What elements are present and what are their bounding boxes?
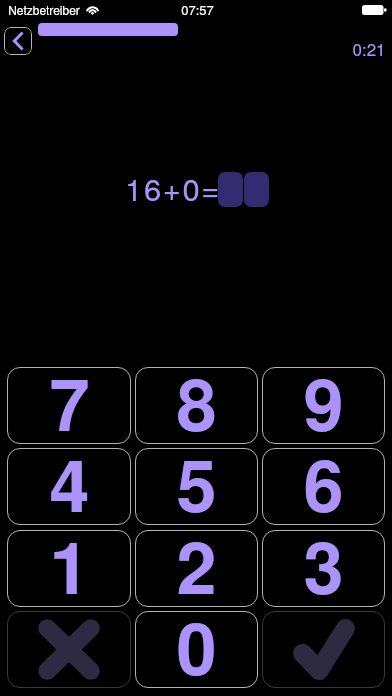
button[interactable]: 0 — [135, 611, 258, 688]
staticText: 0 — [176, 594, 217, 696]
staticText: 8 — [176, 350, 217, 453]
button[interactable]: 9 — [262, 367, 385, 444]
staticText: 9 — [303, 350, 344, 453]
button[interactable]: Back — [4, 27, 32, 55]
staticText: 16+0= — [125, 165, 221, 209]
staticText: 4 — [49, 431, 90, 534]
staticText: 3 — [303, 513, 344, 616]
button[interactable]: 3 — [262, 530, 385, 607]
button[interactable]: 5 — [135, 448, 258, 525]
staticText: 6 — [303, 431, 344, 534]
staticText: 0:21 — [352, 36, 386, 60]
button[interactable]: Submit — [262, 611, 385, 688]
staticText: 1 — [49, 513, 90, 616]
staticText: 5 — [176, 431, 217, 534]
staticText: 7 — [49, 350, 90, 453]
staticText: 2 — [176, 513, 217, 616]
button[interactable]: 4 — [7, 448, 131, 525]
button[interactable]: 6 — [262, 448, 385, 525]
button[interactable]: 8 — [135, 367, 258, 444]
button[interactable]: 7 — [7, 367, 131, 444]
button[interactable]: Clear — [7, 611, 131, 688]
button[interactable]: 2 — [135, 530, 258, 607]
staticText: Netzbetreiber — [8, 1, 80, 18]
button[interactable]: 1 — [7, 530, 131, 607]
staticText: 07:57 — [181, 0, 214, 19]
